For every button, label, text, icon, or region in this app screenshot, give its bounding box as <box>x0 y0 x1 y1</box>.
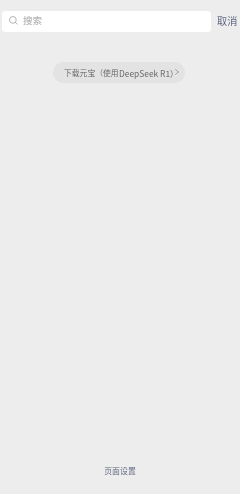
staticText: 页面设置 <box>104 465 136 476</box>
staticText: 取消 <box>217 13 238 28</box>
button[interactable]: 下载元宝（使用 <box>53 62 185 83</box>
staticText: 搜索 <box>23 13 43 27</box>
button[interactable]: 搜索 <box>2 11 211 32</box>
staticText: DeepSeek R1） <box>119 67 179 79</box>
staticText: 下载元宝（使用 <box>64 67 119 78</box>
button[interactable]: 取消 <box>213 11 240 32</box>
button[interactable]: 页面设置 <box>98 461 142 479</box>
